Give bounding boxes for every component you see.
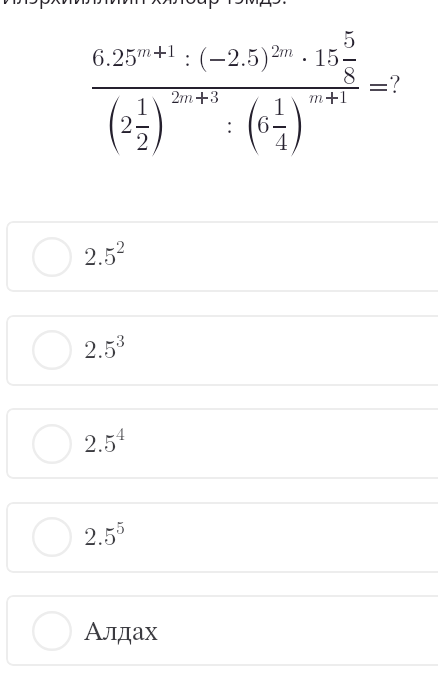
staticText: : [226, 104, 234, 140]
staticText: m [178, 83, 193, 108]
staticText: 8 [343, 55, 356, 91]
button[interactable] [6, 502, 438, 573]
staticText: 1 [136, 86, 149, 122]
staticText: m [308, 83, 323, 108]
staticText: 6 [257, 104, 270, 140]
staticText: 1 [339, 83, 348, 108]
staticText: 5 [343, 19, 356, 55]
staticText: Алдах [84, 620, 158, 647]
button[interactable] [6, 595, 438, 666]
button[interactable] [6, 315, 438, 386]
button[interactable] [6, 221, 438, 292]
staticText: 4 [116, 420, 125, 445]
staticText: Илэрхийллийн хялбар тэмдэ. [2, 0, 287, 10]
staticText: 2 [271, 37, 280, 62]
staticText: 1 [273, 86, 286, 122]
staticText: 2 [171, 83, 180, 108]
staticText: 2.5 [84, 236, 117, 272]
staticText: 2 [136, 121, 149, 157]
staticText: 2.5 [84, 516, 117, 552]
staticText: 3 [210, 83, 219, 108]
staticText: 5 [116, 514, 125, 539]
staticText: 2 [116, 233, 125, 258]
staticText: m [136, 37, 151, 62]
staticText: : [184, 37, 192, 73]
staticText: 6.25 [92, 37, 138, 73]
staticText: 2.5 [84, 329, 117, 365]
staticText: ) [260, 37, 270, 73]
staticText: ? [389, 64, 401, 100]
button[interactable] [6, 408, 438, 479]
staticText: 2.5 [84, 423, 117, 459]
staticText: ( [198, 37, 208, 73]
staticText: 2.5 [227, 37, 260, 73]
staticText: m [278, 37, 293, 62]
staticText: 2 [120, 104, 133, 140]
staticText: 1 [167, 37, 176, 62]
staticText: 4 [275, 121, 288, 157]
staticText: 3 [116, 327, 125, 352]
staticText: 15 [314, 37, 340, 73]
